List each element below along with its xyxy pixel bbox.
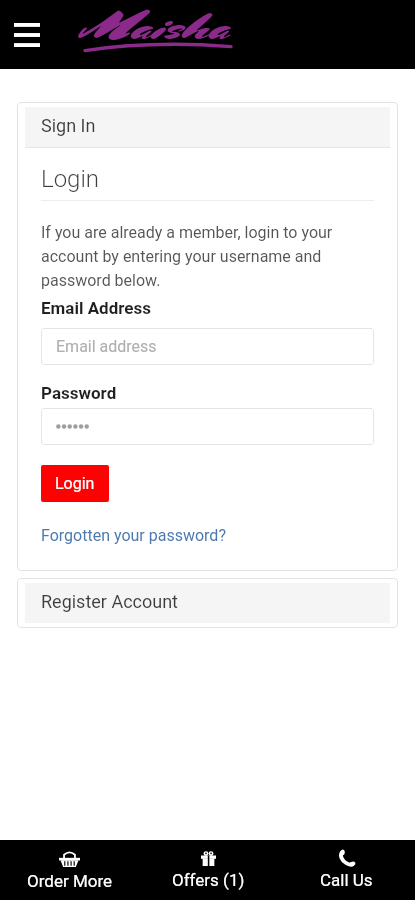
staticText: Maisha <box>84 3 229 52</box>
button[interactable]: Call Us <box>277 840 415 900</box>
staticText: Login <box>41 165 100 193</box>
button[interactable]: Order More <box>0 840 139 900</box>
staticText: Register Account <box>41 591 179 612</box>
staticText: Login <box>55 474 95 493</box>
staticText: If you are already a member, login to yo… <box>41 223 374 290</box>
button[interactable]: Offers <box>139 840 277 900</box>
other: Call Us <box>338 850 354 866</box>
staticText: Sign In <box>41 115 96 136</box>
staticText: Offers (1) <box>172 870 245 890</box>
button[interactable]: Register Account <box>17 578 398 628</box>
staticText: Call Us <box>320 870 373 890</box>
other: Offers <box>201 851 216 866</box>
staticText: Password <box>41 383 117 403</box>
button[interactable]: Forgotten your password? <box>41 526 226 545</box>
button[interactable] <box>41 408 374 445</box>
button[interactable]: Login <box>41 465 109 502</box>
button[interactable]: Email address <box>41 328 374 365</box>
staticText: Email address <box>56 337 157 356</box>
staticText: Order More <box>27 871 113 891</box>
button[interactable]: Open navigation menu <box>2 6 52 64</box>
staticText: Email Address <box>41 298 152 318</box>
other: Order More <box>59 850 80 867</box>
